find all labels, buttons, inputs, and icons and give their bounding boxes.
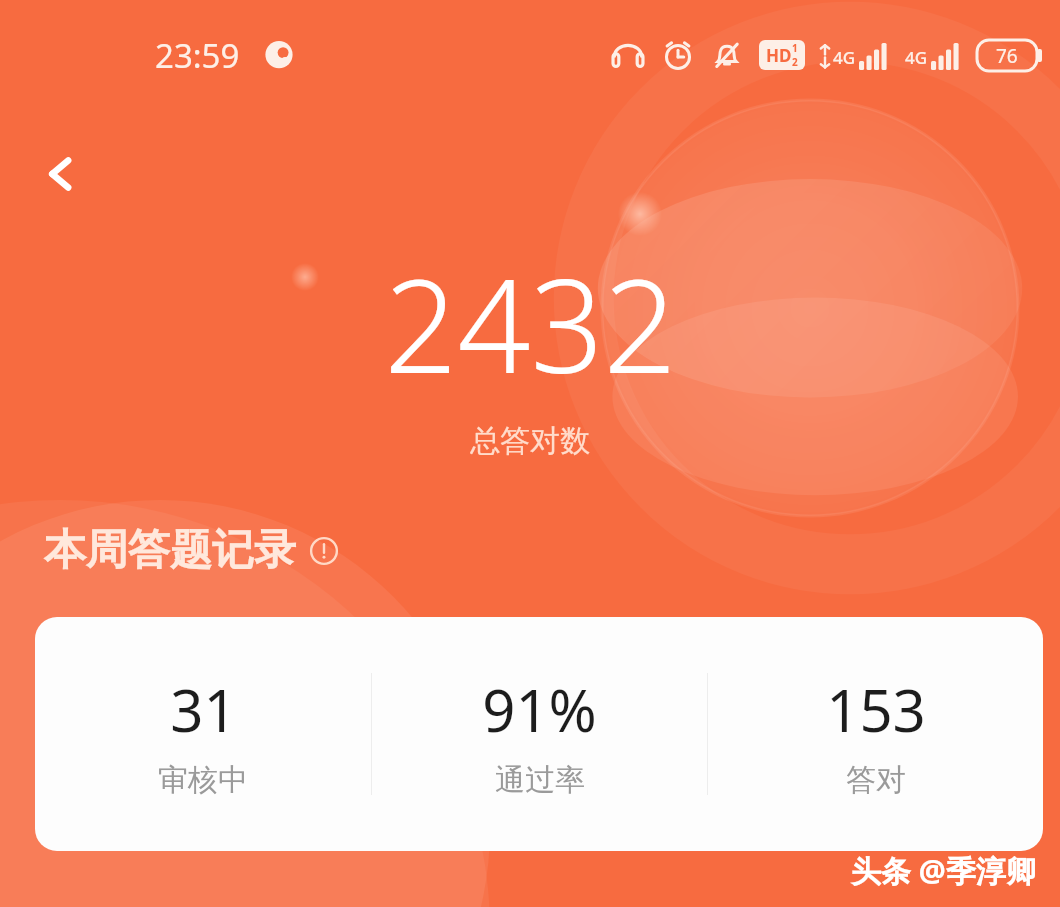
staticText: 2 [792, 55, 798, 69]
button[interactable]: 本周答题记录 [44, 524, 338, 577]
staticText: 76 [996, 43, 1018, 69]
staticText: 31 [170, 670, 237, 749]
staticText: 4G [905, 46, 928, 69]
staticText: 23:59 [155, 33, 240, 78]
staticText: 头条 @季淳卿 [851, 850, 1036, 891]
staticText: 总答对数 [470, 422, 590, 460]
staticText: 1 [792, 41, 798, 55]
staticText: 答对 [846, 761, 906, 799]
staticText: 本周答题记录 [44, 524, 296, 577]
staticText: 4G [833, 46, 856, 69]
staticText: 审核中 [158, 761, 248, 799]
staticText: 153 [826, 670, 926, 749]
staticText: 2432 [384, 236, 677, 410]
staticText: 通过率 [495, 761, 585, 799]
staticText: 91% [482, 670, 597, 749]
button[interactable]: 31 [35, 617, 1043, 851]
button[interactable]: Back [22, 135, 100, 213]
staticText: HD [766, 44, 792, 67]
